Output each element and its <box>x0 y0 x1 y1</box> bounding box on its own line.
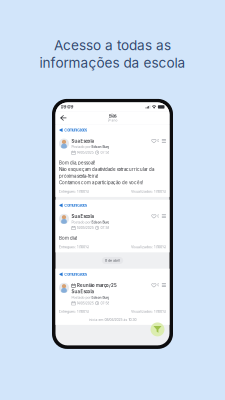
staticText: 0 <box>157 283 159 287</box>
staticText: 14/05/2025 <box>77 226 94 230</box>
staticText: 0 <box>157 214 159 218</box>
staticText: 07:58 <box>100 150 109 154</box>
staticText: Visualizados: 1 (100%) <box>131 245 166 249</box>
staticText: Sua Escola <box>71 138 93 144</box>
button[interactable]: Filtrar <box>150 322 164 336</box>
staticText: Visualizados: 1 (100%) <box>131 309 166 314</box>
button[interactable]: Voltar <box>55 111 71 124</box>
staticText: Entregues: 1 (100%) <box>59 189 89 194</box>
staticText: Comunicados <box>64 203 87 208</box>
staticText: Acesso a todas as <box>54 37 171 53</box>
staticText: Sua Escola <box>71 214 93 219</box>
staticText: informações da escola <box>39 54 185 71</box>
staticText: Visualizados: 1 (100%) <box>131 189 166 194</box>
staticText: 09:09 <box>60 104 73 110</box>
staticText: 07:58 <box>100 301 109 305</box>
staticText: Contamos com a participação de vocês! <box>59 180 143 185</box>
staticText: Edson Burg <box>91 145 109 149</box>
staticText: Não esqueçam da atividade extracurricula… <box>59 167 154 172</box>
staticText: Bom dia! <box>59 235 77 241</box>
staticText: Postado por <box>71 220 91 224</box>
staticText: Edson Burg <box>91 220 109 224</box>
staticText: Bom dia, pessoal! <box>59 160 95 165</box>
staticText: Comunicados <box>64 128 87 132</box>
staticText: Sua Escola <box>71 289 93 294</box>
staticText: Entregues: 1 (100%) <box>59 309 89 314</box>
staticText: Elias <box>108 114 116 118</box>
staticText: próxima sexta-feira! <box>59 173 98 179</box>
staticText: Inicia em 08/04/2025 às 10:30 <box>88 318 136 322</box>
staticText: 8 de abril <box>105 258 120 263</box>
staticText: Postado por <box>71 295 91 299</box>
staticText: 14/05/2025 <box>77 301 94 305</box>
staticText: Comunicados <box>64 272 87 277</box>
staticText: 07:58 <box>100 226 109 230</box>
staticText: 14/05/2025 <box>77 150 94 154</box>
staticText: Reunião março/25 <box>77 283 117 288</box>
staticText: Edson Burg <box>91 295 109 299</box>
staticText: Entregues: 1 (100%) <box>59 245 89 249</box>
staticText: Postado por <box>71 145 91 149</box>
staticText: 0 <box>157 139 159 143</box>
staticText: 9º ano <box>107 118 117 122</box>
